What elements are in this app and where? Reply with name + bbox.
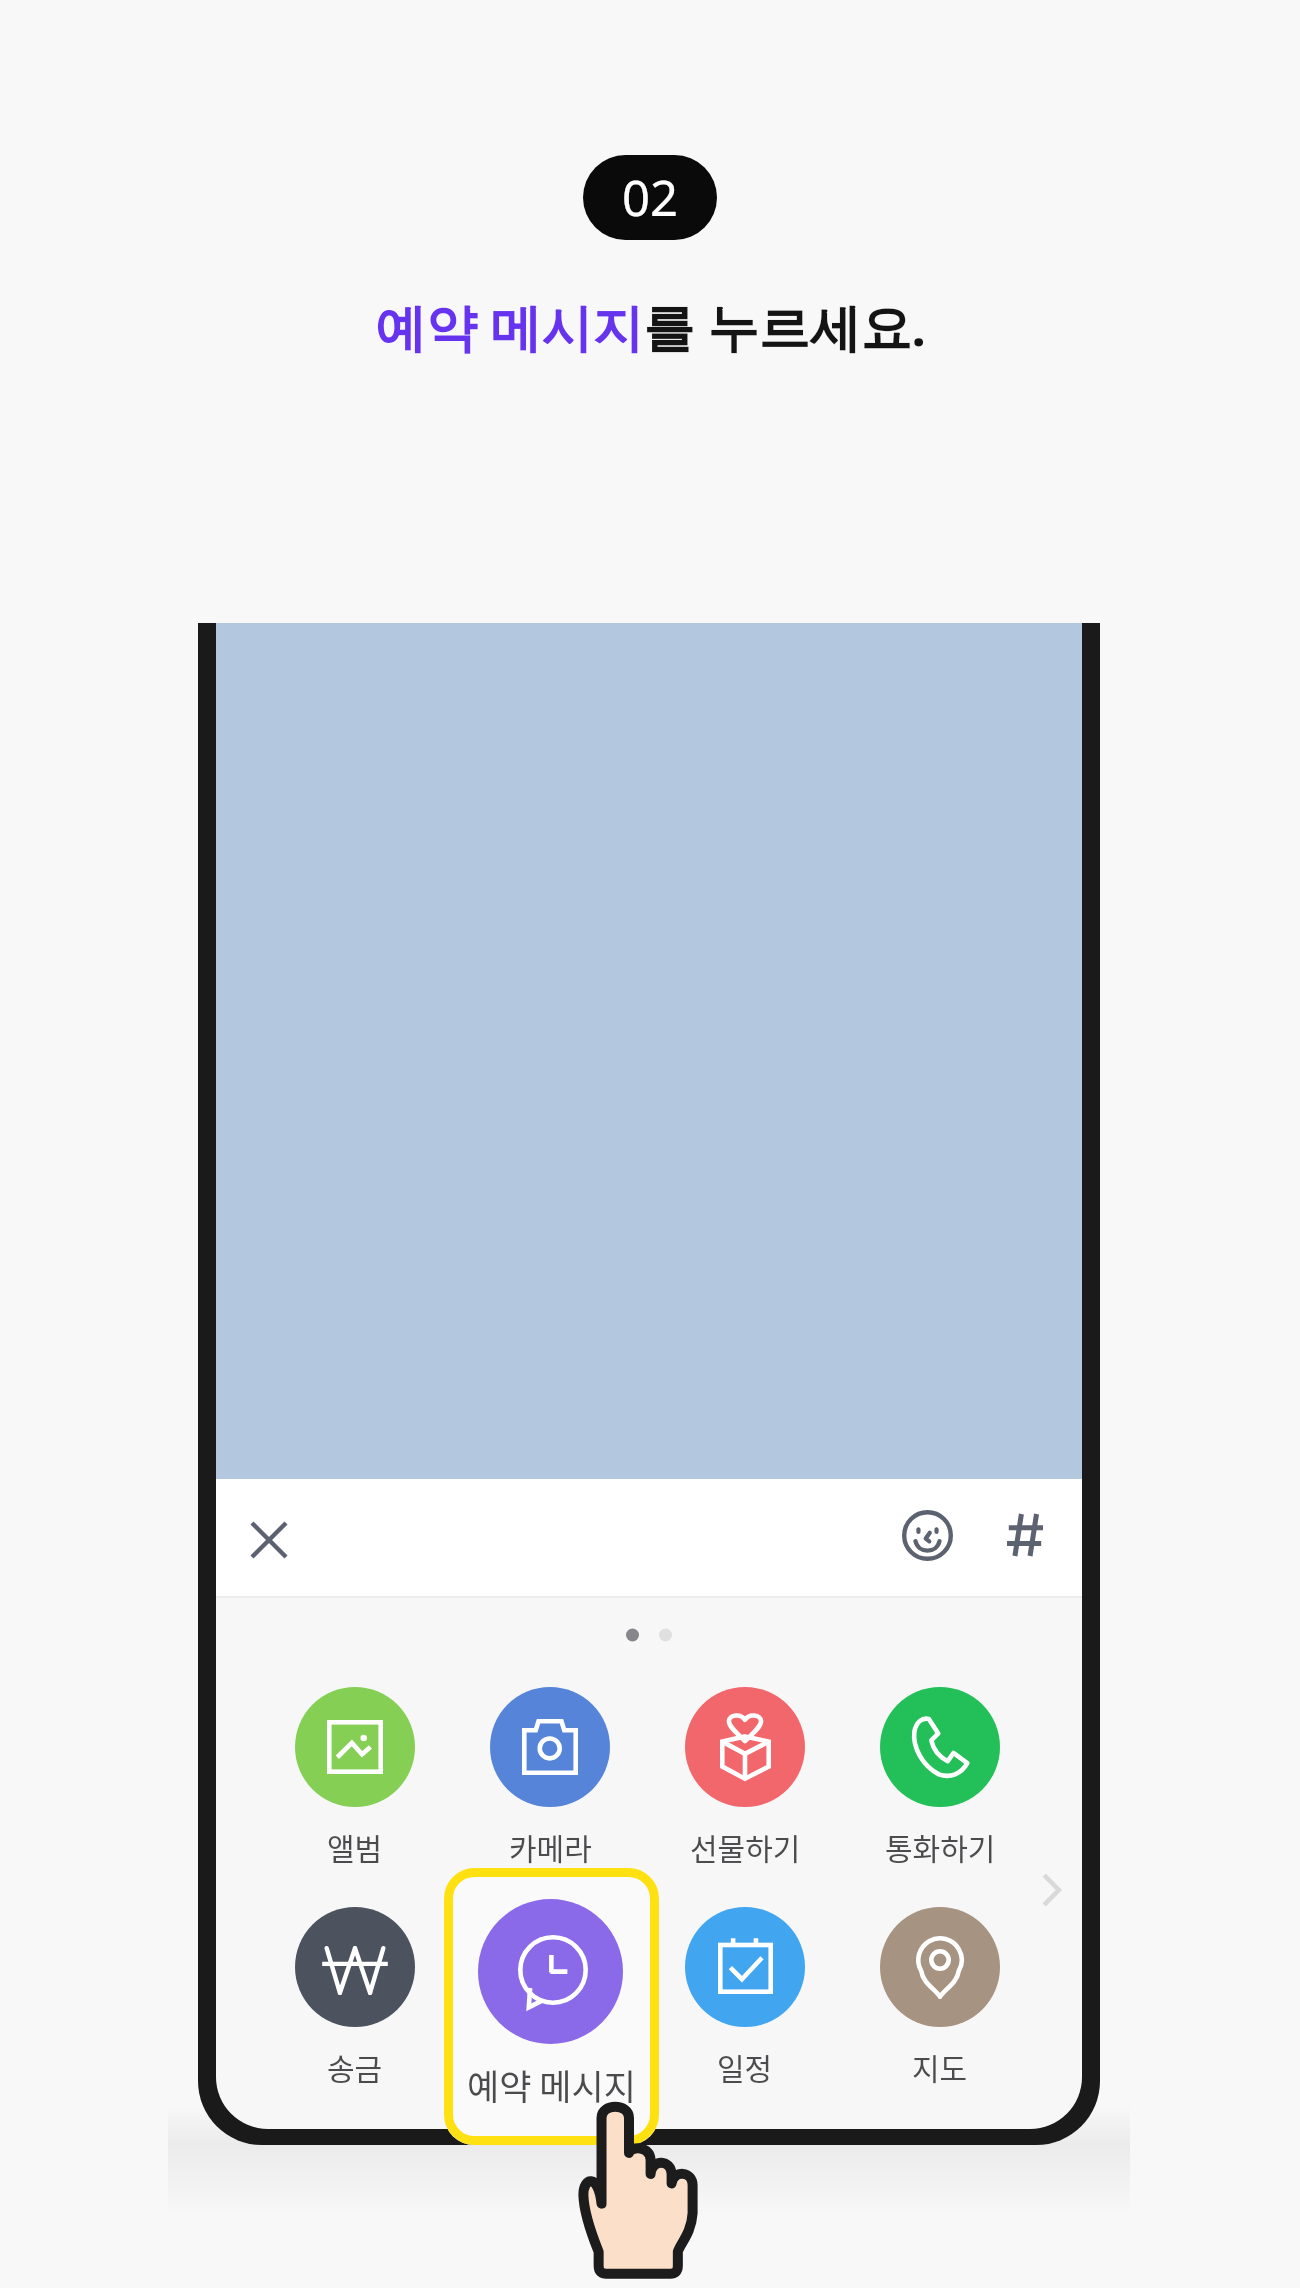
button[interactable]: Next page: [1023, 1862, 1079, 1918]
button[interactable]: 지도: [843, 1895, 1037, 2095]
button[interactable]: Close: [233, 1504, 305, 1576]
staticText: 예약 메시지를 누르세요.: [375, 291, 926, 361]
staticText: 일정: [717, 2045, 773, 2088]
staticText: 카메라: [509, 1825, 592, 1868]
button[interactable]: Emoji: [891, 1499, 963, 1571]
staticText: 02: [622, 164, 679, 231]
staticText: 예약 메시지: [467, 2059, 636, 2109]
staticText: 지도: [912, 2045, 968, 2088]
button[interactable]: 통화하기: [843, 1675, 1037, 1875]
button[interactable]: 카메라: [453, 1675, 647, 1875]
staticText: 앨범: [327, 1825, 383, 1868]
button[interactable]: 02: [583, 155, 717, 240]
button[interactable]: Hashtag: [989, 1499, 1061, 1571]
staticText: 통화하기: [885, 1825, 996, 1868]
staticText: 선물하기: [690, 1825, 801, 1868]
button[interactable]: 앨범: [258, 1675, 452, 1875]
staticText: 송금: [327, 2045, 383, 2088]
button[interactable]: 송금: [258, 1895, 452, 2095]
button[interactable]: [444, 1868, 659, 2145]
button[interactable]: 일정: [648, 1895, 842, 2095]
button[interactable]: 선물하기: [648, 1675, 842, 1875]
